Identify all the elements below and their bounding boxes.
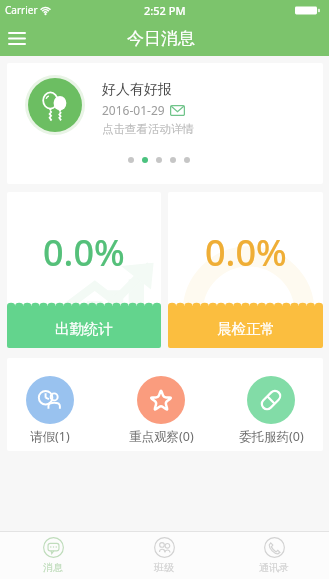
button[interactable]: 班级 — [109, 532, 219, 579]
staticText: 今日消息 — [127, 28, 195, 49]
staticText: 点击查看活动详情 — [102, 122, 194, 136]
staticText: 0.0% — [43, 228, 125, 277]
staticText: 请假(1) — [30, 428, 70, 445]
button[interactable]: 重点观察(0) — [106, 358, 216, 451]
staticText: 2016-01-29 — [102, 102, 165, 118]
staticText: 通讯录 — [259, 561, 289, 574]
button[interactable]: 0.0% — [7, 192, 161, 348]
staticText: 2:52 PM — [144, 3, 186, 18]
staticText: 出勤统计 — [55, 320, 113, 338]
staticText: 消息 — [43, 561, 63, 574]
button[interactable]: 消息 — [0, 532, 108, 579]
staticText: Carrier — [5, 3, 38, 17]
staticText: 班级 — [154, 561, 174, 574]
staticText: 好人有好报 — [102, 81, 172, 99]
button[interactable]: 委托服药(0) — [216, 358, 323, 451]
staticText: 0.0% — [205, 228, 287, 277]
staticText: 委托服药(0) — [239, 428, 304, 445]
staticText: 晨检正常 — [217, 320, 275, 338]
staticText: 重点观察(0) — [129, 428, 194, 445]
button[interactable]: Menu — [1, 22, 33, 54]
button[interactable]: 请假(1) — [7, 358, 105, 451]
button[interactable]: 好人有好报 — [7, 63, 323, 184]
button[interactable]: 0.0% — [168, 192, 323, 348]
button[interactable]: 通讯录 — [219, 532, 329, 579]
